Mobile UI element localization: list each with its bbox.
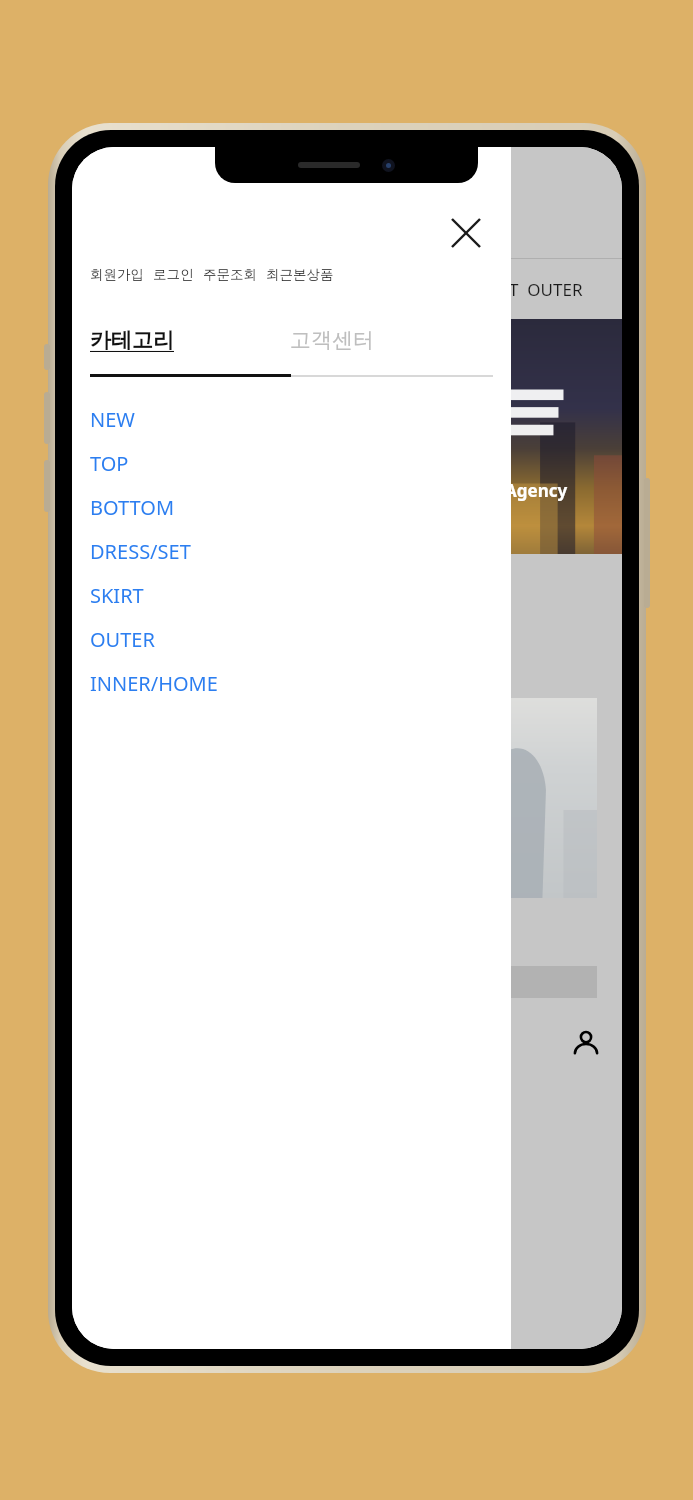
button[interactable]: 로그인 [153, 266, 203, 283]
staticText: TOP [90, 450, 129, 477]
button[interactable]: DRESS/SET [72, 529, 511, 573]
staticText: 최근본상품 [266, 266, 334, 283]
staticText: NEW [90, 406, 135, 433]
staticText: 로그인 [153, 266, 194, 283]
staticText: INNER/HOME [90, 670, 218, 697]
button[interactable]: NEW [72, 397, 511, 441]
button[interactable]: 고객센터 [290, 327, 490, 353]
button[interactable]: 최근본상품 [266, 266, 343, 283]
button[interactable]: 카테고리 [90, 327, 290, 353]
button[interactable]: OUTER [72, 617, 511, 661]
staticText: SKIRT [90, 582, 144, 609]
staticText: 회원가입 [90, 266, 144, 283]
button[interactable]: My page [564, 1022, 608, 1066]
button[interactable]: TOP [72, 441, 511, 485]
staticText: DRESS/SET [90, 538, 191, 565]
button[interactable]: BOTTOM [72, 485, 511, 529]
button[interactable]: Close [442, 209, 490, 257]
staticText: OUTER [90, 626, 155, 653]
button[interactable]: SKIRT [72, 573, 511, 617]
button[interactable]: INNER/HOME [72, 661, 511, 705]
staticText: 카테고리 [90, 327, 174, 353]
staticText: T OUTER [509, 278, 583, 301]
staticText: 주문조회 [203, 266, 257, 283]
staticText: BOTTOM [90, 494, 175, 521]
button[interactable]: 회원가입 [90, 266, 153, 283]
staticText: 고객센터 [290, 327, 374, 353]
button[interactable]: 주문조회 [203, 266, 266, 283]
staticText: Agency [505, 479, 568, 502]
